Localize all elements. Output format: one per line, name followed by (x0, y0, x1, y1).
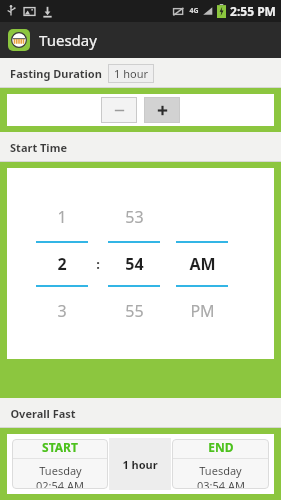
staticText: END (208, 439, 234, 455)
button[interactable]: START (12, 439, 108, 489)
staticText: Start Time (10, 140, 67, 155)
button[interactable]: 2 (33, 253, 91, 275)
staticText: 54 (125, 253, 144, 275)
staticText: 1 (57, 206, 67, 228)
staticText: Overall Fast (10, 406, 76, 421)
staticText: Fasting Duration (10, 66, 102, 81)
staticText: 3 (57, 300, 67, 322)
staticText: 2 (57, 253, 67, 275)
button[interactable]: App icon (8, 29, 30, 51)
staticText: 53 (125, 206, 144, 228)
staticText: 03:54 AM (197, 478, 245, 489)
button[interactable]: PM (173, 300, 231, 322)
button[interactable]: 53 (105, 206, 163, 228)
staticText: 4G (189, 6, 199, 16)
button[interactable]: 55 (105, 300, 163, 322)
button[interactable]: 54 (105, 253, 163, 275)
button[interactable]: END (172, 439, 269, 489)
staticText: : (96, 255, 100, 273)
button[interactable]: AM (173, 253, 231, 275)
staticText: 55 (125, 300, 144, 322)
staticText: Tuesday (199, 463, 242, 478)
staticText: PM (190, 300, 215, 322)
button[interactable]: Increase duration (145, 98, 179, 122)
staticText: START (42, 439, 78, 455)
staticText: 2:55 PM (230, 3, 276, 19)
staticText: AM (189, 253, 216, 275)
staticText: 1 hour (114, 66, 148, 81)
button[interactable]: 3 (33, 300, 91, 322)
staticText: Tuesday (39, 30, 97, 50)
staticText: 02:54 AM (36, 478, 84, 489)
button[interactable]: 1 (33, 206, 91, 228)
button[interactable]: Decrease duration (102, 98, 136, 122)
staticText: 1 hour (122, 457, 158, 472)
staticText: Tuesday (39, 463, 82, 478)
